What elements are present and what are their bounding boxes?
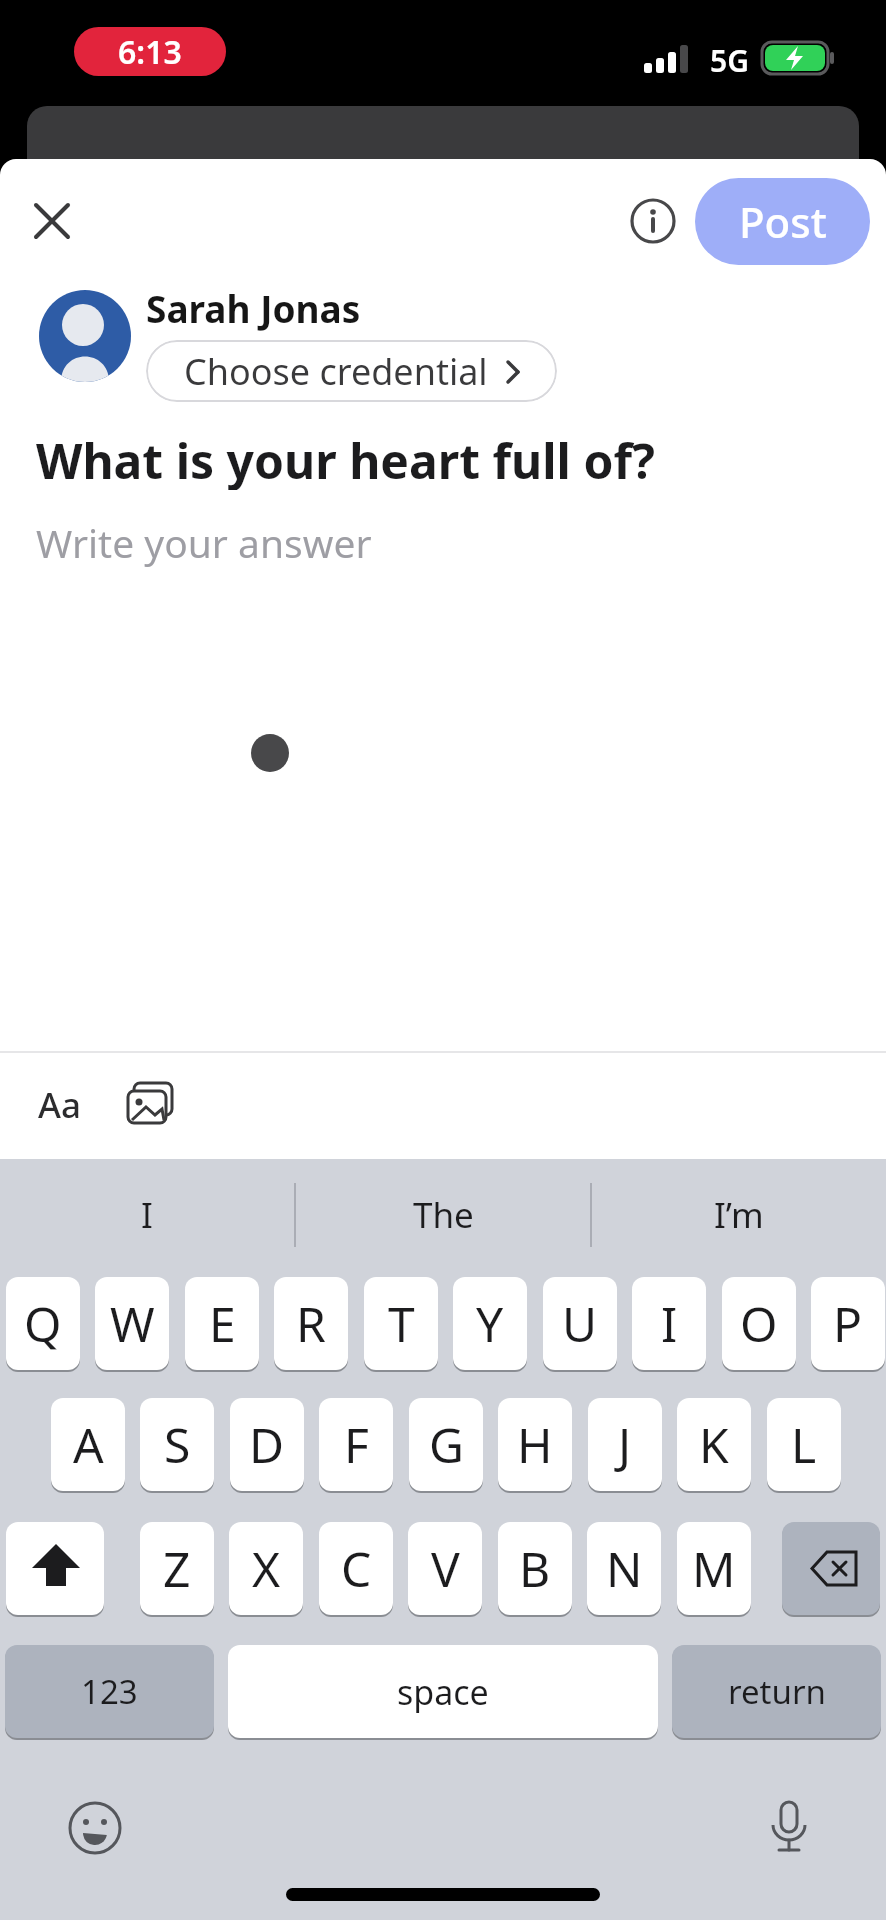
staticText: Sarah Jonas [146, 283, 361, 333]
button[interactable] [65, 1798, 125, 1858]
staticText: K [699, 1412, 729, 1477]
button[interactable]: A [51, 1398, 125, 1491]
button[interactable]: B [498, 1522, 572, 1615]
staticText: R [296, 1291, 326, 1356]
button[interactable]: O [722, 1277, 796, 1370]
button[interactable]: space [228, 1645, 658, 1738]
staticText: P [833, 1291, 863, 1356]
button[interactable]: E [185, 1277, 259, 1370]
staticText: What is your heart full of? [36, 428, 655, 490]
button[interactable]: I’m [652, 1186, 826, 1244]
button[interactable] [782, 1522, 880, 1615]
staticText: I [141, 1191, 153, 1239]
staticText: The [413, 1191, 474, 1239]
staticText: O [740, 1291, 778, 1356]
staticText: G [429, 1412, 464, 1477]
button[interactable]: P [811, 1277, 885, 1370]
staticText: L [791, 1412, 817, 1477]
staticText: E [209, 1291, 236, 1356]
staticText: Aa [38, 1081, 81, 1129]
button[interactable]: K [677, 1398, 751, 1491]
button[interactable]: I [632, 1277, 706, 1370]
staticText: D [249, 1412, 285, 1477]
staticText: M [692, 1536, 736, 1601]
staticText: I’m [714, 1191, 764, 1239]
button[interactable]: C [319, 1522, 393, 1615]
button[interactable]: X [229, 1522, 303, 1615]
button[interactable]: 6:13 [74, 27, 226, 76]
button[interactable]: 123 [5, 1645, 214, 1738]
staticText: Q [24, 1291, 62, 1356]
staticText: B [519, 1536, 551, 1601]
staticText: J [618, 1412, 632, 1477]
button[interactable]: Z [140, 1522, 214, 1615]
button[interactable] [629, 197, 677, 245]
button[interactable]: N [587, 1522, 661, 1615]
button[interactable] [759, 1796, 819, 1856]
staticText: 6:13 [118, 30, 182, 74]
button[interactable]: D [230, 1398, 304, 1491]
staticText: N [606, 1536, 643, 1601]
button[interactable]: I [60, 1186, 234, 1244]
button[interactable]: T [364, 1277, 438, 1370]
staticText: S [164, 1412, 191, 1477]
staticText: return [728, 1669, 826, 1714]
staticText: Write your answer [36, 516, 372, 569]
staticText: V [431, 1536, 460, 1601]
button[interactable]: G [409, 1398, 483, 1491]
button[interactable]: W [95, 1277, 169, 1370]
button[interactable]: M [677, 1522, 751, 1615]
button[interactable]: Y [453, 1277, 527, 1370]
button[interactable]: U [543, 1277, 617, 1370]
staticText: space [397, 1669, 489, 1715]
staticText: C [341, 1536, 372, 1601]
staticText: I [661, 1291, 678, 1356]
staticText: T [388, 1291, 415, 1356]
button[interactable]: L [767, 1398, 841, 1491]
button[interactable] [6, 1522, 104, 1615]
staticText: X [252, 1536, 281, 1601]
button[interactable]: R [274, 1277, 348, 1370]
staticText: 5G [710, 40, 749, 78]
button[interactable]: The [356, 1186, 530, 1244]
button[interactable]: Post [695, 178, 870, 265]
staticText: F [344, 1412, 369, 1477]
button[interactable]: S [140, 1398, 214, 1491]
staticText: 123 [81, 1669, 138, 1714]
button[interactable]: J [588, 1398, 662, 1491]
staticText: Post [739, 193, 827, 250]
button[interactable]: Choose credential [146, 340, 557, 402]
button[interactable] [30, 199, 74, 243]
button[interactable] [122, 1077, 178, 1133]
staticText: U [562, 1291, 598, 1356]
button[interactable]: return [672, 1645, 881, 1738]
button[interactable]: V [408, 1522, 482, 1615]
staticText: Choose credential [184, 347, 488, 396]
staticText: Z [163, 1536, 191, 1601]
staticText: W [110, 1291, 155, 1356]
staticText: H [517, 1412, 553, 1477]
button[interactable]: Aa [38, 1080, 102, 1130]
button[interactable]: F [319, 1398, 393, 1491]
button[interactable]: H [498, 1398, 572, 1491]
staticText: A [73, 1412, 104, 1477]
staticText: Y [476, 1291, 504, 1356]
button[interactable]: Q [6, 1277, 80, 1370]
